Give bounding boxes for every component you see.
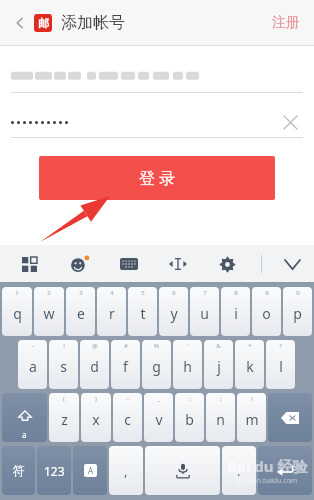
staticText: h bbox=[183, 357, 192, 376]
staticText: . bbox=[237, 462, 241, 480]
button[interactable]: 4 bbox=[97, 287, 126, 336]
button[interactable]: Comma bbox=[109, 446, 143, 495]
staticText: 9 bbox=[265, 289, 269, 297]
button[interactable]: ? bbox=[266, 340, 295, 389]
button[interactable]: # bbox=[111, 340, 140, 389]
button[interactable]: Keyboard menu bbox=[14, 249, 44, 279]
staticText: x bbox=[92, 410, 100, 429]
button[interactable]: 9 bbox=[252, 287, 281, 336]
button[interactable]: 2 bbox=[34, 287, 64, 336]
staticText: m bbox=[245, 410, 259, 429]
staticText: 邮 bbox=[38, 16, 49, 30]
staticText: 登 录 bbox=[139, 167, 176, 189]
button[interactable]: % bbox=[142, 340, 171, 389]
staticText: s bbox=[60, 357, 67, 376]
button[interactable]: Language bbox=[73, 446, 107, 495]
button[interactable]: 登 录 bbox=[39, 156, 275, 200]
staticText: 6 bbox=[172, 289, 176, 297]
button[interactable]: _ bbox=[144, 393, 173, 442]
button[interactable]: Space bbox=[145, 446, 220, 495]
staticText: 7 bbox=[203, 289, 207, 297]
button[interactable] bbox=[11, 62, 303, 92]
staticText: ? bbox=[279, 342, 282, 350]
staticText: 0 bbox=[296, 289, 300, 297]
staticText: / bbox=[250, 395, 253, 403]
staticText: b bbox=[185, 410, 194, 429]
staticText: 4 bbox=[110, 289, 114, 297]
button[interactable]: ! bbox=[49, 340, 78, 389]
staticText: 2 bbox=[47, 289, 51, 297]
button[interactable]: ; bbox=[206, 393, 235, 442]
button[interactable]: 1 bbox=[2, 287, 32, 336]
staticText: 1 bbox=[15, 289, 19, 297]
staticText: 注册 bbox=[272, 14, 300, 32]
button[interactable]: : bbox=[175, 393, 204, 442]
staticText: 3 bbox=[79, 289, 83, 297]
button[interactable]: 7 bbox=[190, 287, 219, 336]
staticText: f bbox=[123, 357, 128, 376]
staticText: v bbox=[155, 410, 163, 429]
button[interactable]: ~ bbox=[18, 340, 47, 389]
staticText: ( bbox=[63, 395, 65, 403]
button[interactable]: Move cursor bbox=[163, 249, 193, 279]
button[interactable]: - bbox=[113, 393, 142, 442]
staticText: - bbox=[127, 395, 129, 403]
staticText: ! bbox=[63, 342, 65, 350]
staticText: & bbox=[216, 342, 221, 350]
button[interactable]: ( bbox=[49, 393, 79, 442]
button[interactable]: Back bbox=[8, 11, 32, 35]
staticText: ' bbox=[187, 342, 189, 350]
staticText: d bbox=[90, 357, 99, 376]
button[interactable]: 3 bbox=[66, 287, 95, 336]
button[interactable]: 注册 bbox=[266, 8, 306, 38]
staticText: : bbox=[189, 395, 191, 403]
button[interactable]: & bbox=[204, 340, 233, 389]
button[interactable]: Numbers bbox=[37, 446, 71, 495]
staticText: u bbox=[200, 304, 209, 323]
staticText: y bbox=[170, 304, 178, 323]
staticText: Bai du 经验 bbox=[227, 456, 308, 476]
button[interactable]: ' bbox=[173, 340, 202, 389]
staticText: p bbox=[293, 304, 302, 323]
button[interactable]: Emoji bbox=[64, 249, 94, 279]
button[interactable]: 0 bbox=[283, 287, 312, 336]
staticText: 添加帐号 bbox=[61, 13, 125, 33]
button[interactable]: Hide keyboard bbox=[276, 248, 308, 280]
button[interactable]: @ bbox=[80, 340, 109, 389]
staticText: k bbox=[246, 357, 254, 376]
staticText: 5 bbox=[141, 289, 145, 297]
button[interactable]: 8 bbox=[221, 287, 250, 336]
button[interactable]: Settings bbox=[212, 249, 242, 279]
staticText: jingyan.baidu.com bbox=[237, 476, 298, 486]
staticText: A bbox=[88, 465, 94, 476]
staticText: i bbox=[234, 304, 238, 323]
staticText: 8 bbox=[234, 289, 238, 297]
button[interactable]: 5 bbox=[128, 287, 157, 336]
staticText: a bbox=[29, 357, 37, 376]
button[interactable]: Enter bbox=[258, 446, 312, 495]
staticText: ; bbox=[220, 395, 222, 403]
button[interactable]: 6 bbox=[159, 287, 188, 336]
staticText: q bbox=[13, 304, 22, 323]
staticText: n bbox=[216, 410, 225, 429]
button[interactable]: Shift bbox=[2, 393, 47, 442]
button[interactable]: * bbox=[235, 340, 264, 389]
button[interactable]: Clear password bbox=[11, 107, 303, 137]
staticText: g bbox=[152, 357, 161, 376]
staticText: t bbox=[140, 304, 146, 323]
button[interactable]: Backspace bbox=[268, 393, 312, 442]
staticText: 123 bbox=[44, 463, 65, 479]
button[interactable]: Keyboard layout bbox=[114, 249, 144, 279]
button[interactable]: Symbols bbox=[2, 446, 35, 495]
staticText: l bbox=[279, 357, 283, 376]
button[interactable]: ) bbox=[81, 393, 111, 442]
staticText: , bbox=[124, 462, 128, 480]
staticText: e bbox=[77, 304, 85, 323]
staticText: z bbox=[61, 410, 68, 429]
button[interactable]: / bbox=[237, 393, 266, 442]
staticText: _ bbox=[157, 395, 160, 403]
staticText: @ bbox=[92, 342, 98, 350]
staticText: j bbox=[217, 357, 221, 376]
button[interactable]: Period bbox=[222, 446, 256, 495]
button[interactable]: Clear password bbox=[277, 109, 303, 135]
